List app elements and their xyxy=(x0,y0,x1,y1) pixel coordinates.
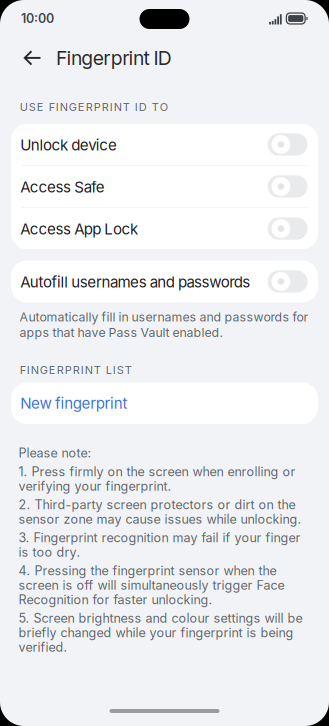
staticText: Unlock device xyxy=(20,136,117,154)
staticText: F I N G E R P R I N T L I S T xyxy=(20,363,132,377)
staticText: 5. Screen brightness and colour settings… xyxy=(18,611,302,654)
staticText: New fingerprint xyxy=(20,394,127,412)
staticText: Fingerprint ID xyxy=(56,46,172,70)
staticText: 10:00 xyxy=(21,11,54,26)
staticText: U S E F I N G E R P R I N T I D T O xyxy=(20,100,168,114)
button[interactable]: Access Safe xyxy=(11,166,318,207)
button[interactable]: Unlock device xyxy=(11,124,318,165)
staticText: 2. Third-party screen protectors or dirt… xyxy=(18,497,301,526)
staticText: Access Safe xyxy=(20,178,105,196)
staticText: Autofill usernames and passwords xyxy=(20,273,250,291)
button[interactable]: Access App Lock xyxy=(11,208,318,249)
staticText: 3. Fingerprint recognition may fail if y… xyxy=(18,530,300,559)
button[interactable]: Autofill usernames and passwords xyxy=(11,260,318,302)
button[interactable]: Back xyxy=(0,51,49,65)
staticText: Access App Lock xyxy=(20,220,138,238)
staticText: Please note: xyxy=(18,446,91,460)
staticText: Automatically fill in usernames and pass… xyxy=(19,309,308,340)
staticText: 4. Pressing the fingerprint sensor when … xyxy=(18,563,284,607)
button[interactable]: New fingerprint xyxy=(11,382,318,424)
staticText: 1. Press firmly on the screen when enrol… xyxy=(18,464,295,493)
